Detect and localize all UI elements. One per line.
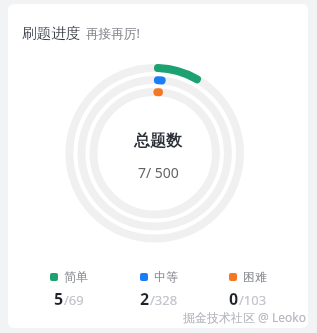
staticText: 掘金技术社区 @ Leoko — [183, 309, 307, 325]
staticText: 总题数 — [134, 131, 182, 151]
staticText: /103 — [239, 291, 267, 309]
button[interactable]: 困难 — [203, 269, 292, 310]
staticText: 7/ 500 — [138, 163, 179, 182]
staticText: 5 — [54, 288, 64, 310]
staticText: 再接再厉! — [86, 25, 140, 42]
staticText: 困难 — [243, 269, 267, 284]
staticText: /69 — [64, 291, 84, 309]
button[interactable]: 中等 — [114, 269, 203, 310]
staticText: 刷题进度 — [22, 24, 81, 42]
staticText: 中等 — [154, 269, 178, 284]
button[interactable]: 简单 — [24, 269, 114, 310]
staticText: 2 — [140, 288, 150, 310]
staticText: 简单 — [64, 269, 88, 284]
staticText: 0 — [229, 288, 239, 310]
staticText: /328 — [150, 291, 178, 309]
